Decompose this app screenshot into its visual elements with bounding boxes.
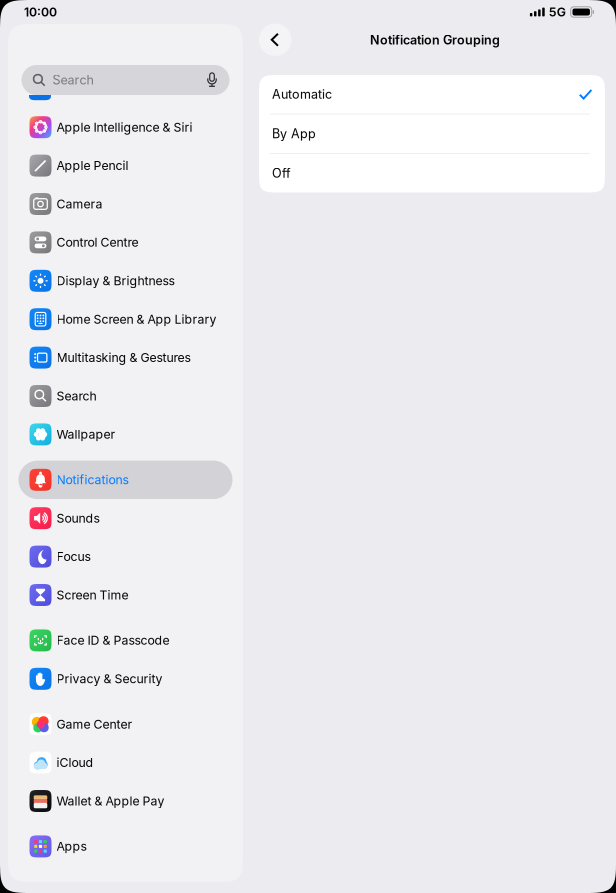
staticText: Screen Time <box>56 588 128 602</box>
button[interactable]: Control Centre <box>18 223 232 262</box>
button[interactable]: Multitasking & Gestures <box>18 338 232 377</box>
button[interactable]: Privacy & Security <box>18 660 232 698</box>
staticText: Privacy & Security <box>56 671 162 686</box>
staticText: Display & Brightness <box>56 273 174 288</box>
staticText: Wallpaper <box>56 427 115 442</box>
staticText: Off <box>272 166 291 181</box>
staticText: Face ID & Passcode <box>56 633 169 648</box>
staticText: 10:00 <box>24 5 57 19</box>
button[interactable]: Home Screen & App Library <box>18 300 232 338</box>
button[interactable]: By App <box>259 114 605 154</box>
staticText: Search <box>52 72 93 88</box>
button[interactable]: Back <box>259 23 291 56</box>
button[interactable]: Search <box>21 65 229 95</box>
button[interactable]: Wallpaper <box>18 415 232 454</box>
staticText: By App <box>272 126 316 141</box>
staticText: Wallet & Apple Pay <box>56 794 164 808</box>
button[interactable]: Game Center <box>18 705 232 743</box>
staticText: 5G <box>549 5 566 19</box>
staticText: Automatic <box>272 87 332 102</box>
button[interactable]: Apps <box>18 827 232 866</box>
staticText: Search <box>56 389 96 403</box>
staticText: Multitasking & Gestures <box>56 350 190 365</box>
button[interactable]: Sounds <box>18 499 232 537</box>
button[interactable]: Face ID & Passcode <box>18 621 232 660</box>
button[interactable]: iCloud <box>18 743 232 782</box>
staticText: Notification Grouping <box>370 32 500 48</box>
staticText: Apple Pencil <box>56 158 128 173</box>
button[interactable]: Off <box>259 154 605 192</box>
button[interactable]: Apple Intelligence & Siri <box>18 108 232 146</box>
button[interactable]: Camera <box>18 185 232 223</box>
button[interactable]: Automatic <box>259 75 605 114</box>
staticText: Camera <box>56 197 102 211</box>
button[interactable]: Display & Brightness <box>18 262 232 300</box>
button[interactable]: Screen Time <box>18 576 232 614</box>
button[interactable]: Apple Pencil <box>18 146 232 185</box>
button[interactable]: Focus <box>18 537 232 576</box>
staticText: Focus <box>56 549 90 564</box>
staticText: Game Center <box>56 717 132 732</box>
staticText: iCloud <box>56 755 93 770</box>
staticText: Home Screen & App Library <box>56 312 216 327</box>
button[interactable]: Notifications <box>18 461 232 499</box>
staticText: Apps <box>56 839 86 854</box>
staticText: Notifications <box>56 472 128 487</box>
staticText: Sounds <box>56 511 99 526</box>
staticText: Apple Intelligence & Siri <box>56 120 192 135</box>
button[interactable]: Search <box>18 377 232 415</box>
button[interactable]: Wallet & Apple Pay <box>18 782 232 820</box>
staticText: Control Centre <box>56 235 138 250</box>
